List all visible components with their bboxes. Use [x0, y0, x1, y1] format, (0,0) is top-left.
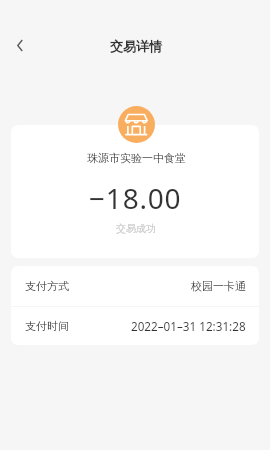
button[interactable]: 支付方式 [11, 266, 259, 306]
staticText: 校园一卡通 [191, 279, 246, 293]
staticText: 支付时间 [25, 319, 69, 333]
staticText: 交易成功 [116, 222, 156, 235]
staticText: 交易详情 [110, 38, 162, 54]
staticText: 珠源市实验一中食堂 [87, 151, 186, 165]
button[interactable]: 支付时间 [11, 307, 259, 345]
button[interactable]: Back [4, 29, 35, 60]
staticText: 2022–01–31 12:31:28 [131, 318, 246, 334]
staticText: −18.00 [89, 179, 182, 217]
staticText: 支付方式 [25, 279, 69, 293]
